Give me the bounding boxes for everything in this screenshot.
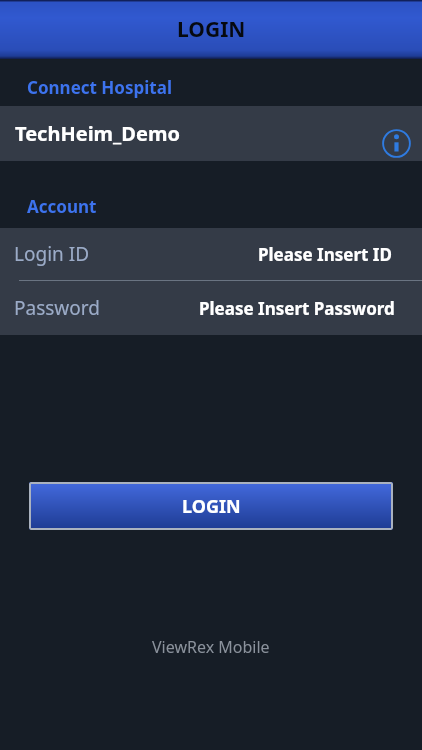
staticText: Connect Hospital [27,76,172,99]
staticText: Please Insert ID [258,243,392,266]
button[interactable] [381,128,412,159]
staticText: TechHeim_Demo [15,120,180,147]
staticText: ViewRex Mobile [152,636,270,658]
staticText: LOGIN [182,494,241,519]
button[interactable]: TechHeim_Demo [0,106,422,161]
button[interactable]: LOGIN [29,482,393,530]
staticText: Account [27,195,97,218]
staticText: Please Insert Password [199,297,395,320]
button[interactable]: Login ID [0,228,422,280]
staticText: Login ID [14,241,90,267]
staticText: LOGIN [177,15,246,44]
button[interactable]: Password [0,281,422,335]
staticText: Password [14,295,100,321]
